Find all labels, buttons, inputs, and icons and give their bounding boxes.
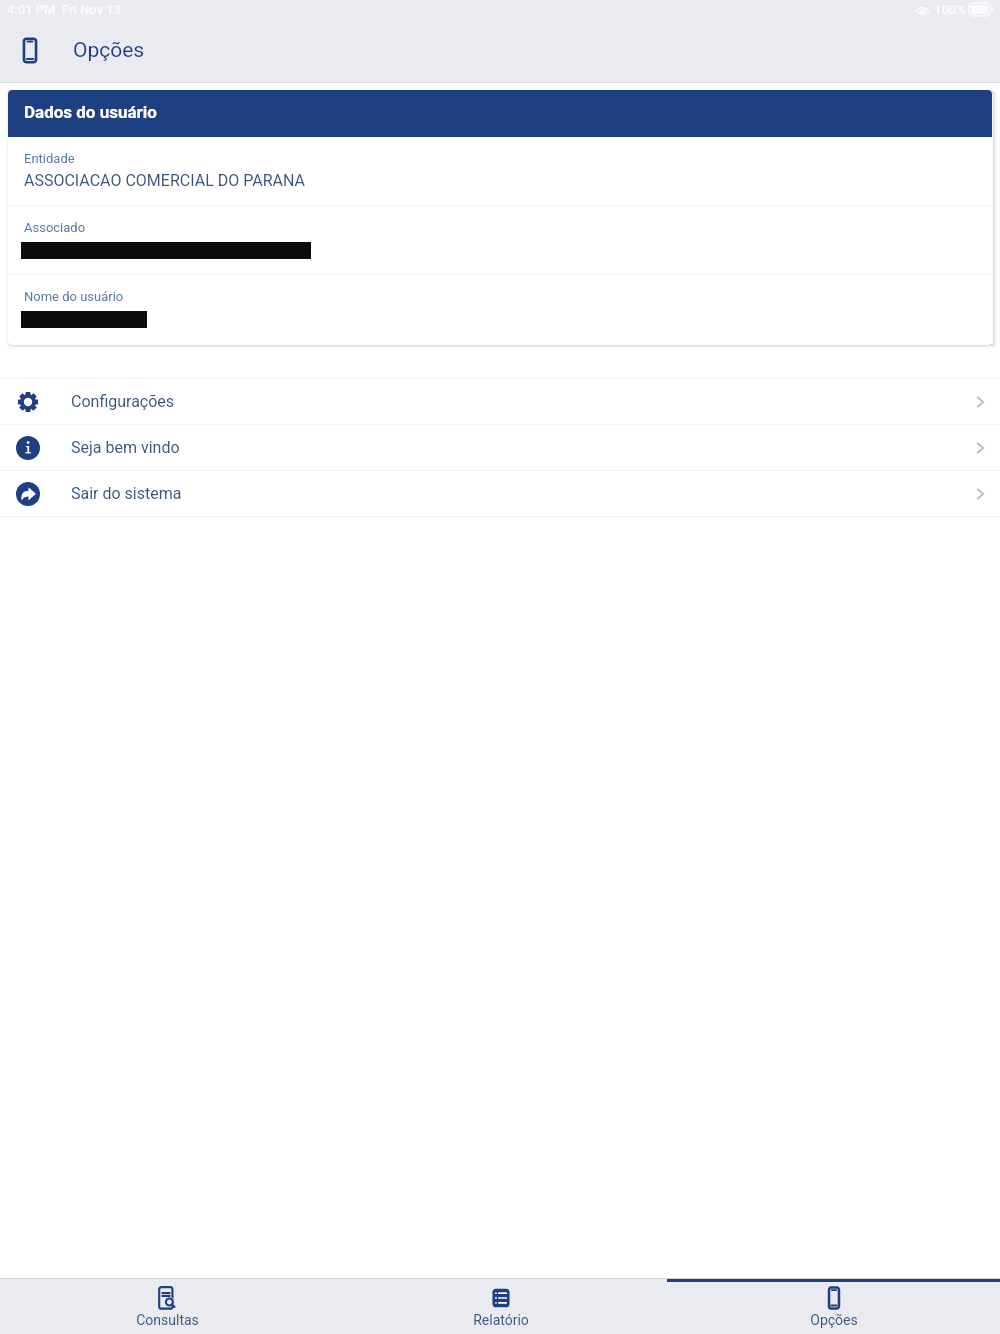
button[interactable]: Configurações	[0, 379, 1000, 424]
staticText: Opções	[73, 38, 145, 63]
staticText: 4:01 PM	[7, 2, 56, 17]
button[interactable]: Relatório	[334, 1279, 667, 1334]
staticText: Associado	[24, 220, 86, 235]
staticText: Dados do usuário	[24, 102, 157, 122]
staticText: Configurações	[71, 392, 175, 411]
staticText: Sair do sistema	[71, 484, 182, 503]
button[interactable]: Sair do sistema	[0, 471, 1000, 516]
button[interactable]: Consultas	[0, 1279, 334, 1334]
button[interactable]: Device	[10, 30, 50, 70]
staticText: Relatório	[473, 1312, 529, 1328]
staticText: Fri Nov 13	[62, 2, 122, 17]
staticText: Entidade	[24, 151, 75, 166]
staticText: Consultas	[136, 1312, 199, 1328]
button[interactable]: Seja bem vindo	[0, 425, 1000, 470]
staticText: Seja bem vindo	[71, 438, 180, 457]
staticText: Nome do usuário	[24, 289, 124, 304]
button[interactable]: Opções	[667, 1279, 1000, 1334]
staticText: Opções	[810, 1312, 858, 1328]
staticText: ASSOCIACAO COMERCIAL DO PARANA	[24, 171, 305, 190]
staticText: 100%	[934, 2, 966, 17]
